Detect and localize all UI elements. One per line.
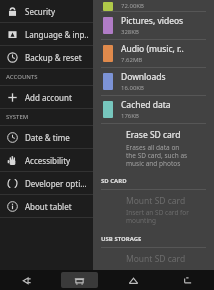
button[interactable]: Security [0, 0, 93, 22]
staticText: Pictures, videos [121, 15, 184, 27]
staticText: 72.00KB [121, 2, 144, 10]
staticText: Mount SD card [126, 253, 186, 264]
button[interactable]: 72.00KB [93, 0, 214, 11]
staticText: 16.00KB [121, 84, 144, 92]
staticText: Erase SD card [126, 129, 181, 141]
staticText: Date & time [25, 132, 70, 143]
staticText: Mount SD card [126, 195, 186, 207]
button[interactable]: Back [8, 272, 45, 288]
button[interactable]: Accessibility [0, 149, 93, 171]
staticText: SD CARD [101, 177, 127, 185]
button[interactable]: Cached data [93, 96, 214, 123]
button[interactable]: Menu [168, 272, 206, 288]
button[interactable]: Date & time [0, 126, 93, 148]
button[interactable]: Downloads [93, 68, 214, 95]
button[interactable]: Audio (music, r.. [93, 40, 214, 67]
button[interactable]: Home [61, 272, 98, 288]
button[interactable]: Developer optio.. [0, 172, 93, 194]
button[interactable]: Backup & reset [0, 46, 93, 68]
staticText: ACCOUNTS [6, 73, 38, 81]
staticText: Add account [25, 92, 72, 103]
staticText: 7.62MB [121, 56, 143, 64]
staticText: About tablet [25, 201, 72, 212]
staticText: Developer optio.. [25, 178, 89, 189]
button[interactable]: Pictures, videos [93, 12, 214, 39]
staticText: USB STORAGE [101, 235, 142, 243]
button[interactable]: Add account [0, 86, 93, 108]
staticText: Language & inp.. [25, 29, 89, 40]
staticText: Security [25, 6, 56, 17]
staticText: Accessibility [25, 155, 71, 166]
staticText: Downloads [121, 71, 166, 83]
staticText: Backup & reset [25, 52, 82, 63]
staticText: Audio (music, r.. [121, 43, 184, 55]
staticText: Insert an SD card for mounting [126, 208, 189, 225]
staticText: Cached data [121, 99, 171, 111]
button[interactable]: Recents [114, 272, 152, 288]
staticText: SYSTEM [6, 113, 29, 121]
staticText: 328KB [121, 28, 139, 36]
button[interactable]: Language & inp.. [0, 23, 93, 45]
staticText: Erases all data on the SD card, such as … [126, 143, 188, 168]
staticText: 176KB [121, 112, 139, 120]
button[interactable]: Erase SD card [93, 124, 214, 173]
button[interactable]: About tablet [0, 195, 93, 217]
